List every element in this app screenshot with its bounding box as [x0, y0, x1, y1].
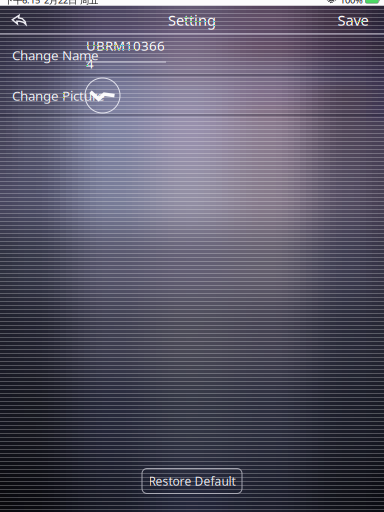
staticText: Save [337, 10, 368, 30]
staticText: Change Picture [12, 87, 105, 104]
staticText: Change Name [12, 46, 99, 64]
button[interactable]: Back [2, 5, 36, 34]
staticText: 下午6:15 [4, 0, 40, 6]
staticText: 2月22日 周五 [44, 0, 98, 6]
button[interactable]: Change Picture [0, 75, 384, 115]
staticText: 100% [340, 0, 363, 6]
staticText: Setting [168, 10, 216, 30]
button[interactable]: Restore Default [142, 468, 242, 493]
staticText: Restore Default [148, 473, 235, 489]
staticText: UBRM103664 [86, 37, 165, 72]
button[interactable]: Save [331, 5, 375, 34]
